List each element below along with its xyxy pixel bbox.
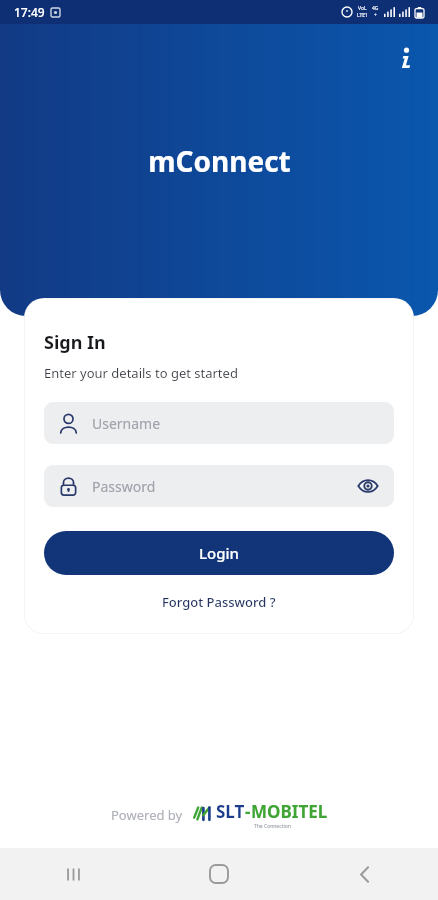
- button[interactable]: Login: [44, 531, 394, 575]
- button[interactable]: Recent apps: [0, 848, 146, 900]
- staticText: Sign In: [44, 330, 106, 355]
- staticText: -: [245, 800, 251, 823]
- staticText: MOBITEL: [251, 800, 328, 823]
- staticText: mConnect: [148, 142, 291, 180]
- button[interactable]: Back: [292, 848, 438, 900]
- staticText: LTE1: [357, 12, 368, 19]
- staticText: 4G: [372, 5, 379, 12]
- staticText: Username: [92, 414, 161, 433]
- staticText: Enter your details to get started: [44, 364, 238, 382]
- staticText: Forgot Password ?: [162, 593, 276, 611]
- button[interactable]: Show password: [352, 470, 384, 502]
- staticText: Powered by: [111, 806, 183, 824]
- staticText: 17:49: [14, 4, 45, 20]
- button[interactable]: Forgot Password ?: [154, 589, 284, 615]
- staticText: VoL: [358, 5, 367, 12]
- button[interactable]: Username: [44, 402, 394, 444]
- staticText: +: [374, 12, 377, 19]
- staticText: Password: [92, 477, 156, 496]
- staticText: Login: [199, 543, 239, 563]
- staticText: SLT: [216, 800, 245, 823]
- button[interactable]: Password: [44, 465, 394, 507]
- button[interactable]: Information: [386, 38, 426, 78]
- button[interactable]: Home: [146, 848, 292, 900]
- staticText: The Connection: [254, 823, 291, 830]
